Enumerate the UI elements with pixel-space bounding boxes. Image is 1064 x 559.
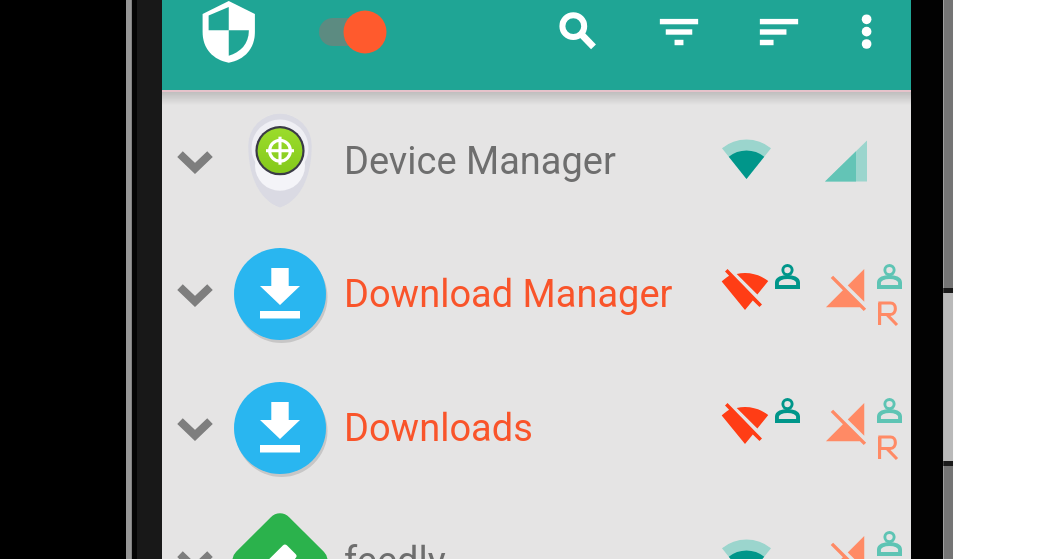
button[interactable]: Search [541, 0, 613, 68]
button[interactable]: Downloads [162, 361, 911, 495]
button[interactable]: Device Manager [162, 94, 911, 228]
staticText: Device Manager [344, 139, 616, 184]
staticText: feedly [344, 539, 446, 559]
button[interactable]: NetGuard [196, 0, 265, 69]
staticText: Downloads [344, 406, 533, 451]
button[interactable]: More options [830, 0, 902, 68]
staticText: Download Manager [344, 272, 673, 317]
button[interactable]: feedly [162, 494, 911, 559]
button[interactable]: Enable NetGuard [308, 2, 384, 62]
button[interactable]: Filter [643, 0, 715, 68]
button[interactable]: Download Manager [162, 227, 911, 361]
button[interactable]: Sort [743, 0, 815, 68]
